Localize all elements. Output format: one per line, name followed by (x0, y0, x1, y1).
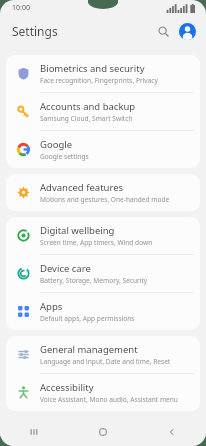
staticText: Accounts and backup (40, 100, 136, 113)
staticText: Samsung Cloud, Smart Switch (40, 114, 133, 123)
button[interactable]: Accessibility (6, 374, 200, 411)
staticText: Screen time, App timers, Wind down (40, 238, 153, 247)
staticText: Voice Assistant, Mono audio, Assistant m… (40, 395, 178, 404)
staticText: Google settings (40, 152, 89, 161)
staticText: Biometrics and security (40, 62, 145, 75)
staticText: Language and input, Date and time, Reset (40, 357, 171, 366)
staticText: Advanced features (40, 181, 124, 194)
button[interactable]: Search (152, 20, 174, 42)
staticText: Google (40, 138, 73, 151)
staticText: Default apps, App permissions (40, 314, 135, 323)
staticText: General management (40, 343, 138, 356)
staticText: Device care (40, 262, 91, 275)
button[interactable]: Back (137, 418, 206, 446)
staticText: Face recognition, Fingerprints, Privacy (40, 76, 158, 85)
staticText: Digital wellbeing (40, 224, 115, 237)
button[interactable]: General management (6, 336, 200, 374)
button[interactable]: Google (6, 131, 200, 168)
button[interactable]: Digital wellbeing (6, 217, 200, 255)
staticText: 10:00 (12, 3, 30, 13)
button[interactable]: Accounts and backup (6, 93, 200, 131)
staticText: Accessibility (40, 381, 94, 394)
button[interactable]: Biometrics and security (6, 55, 200, 93)
staticText: Apps (40, 300, 63, 313)
staticText: Settings (12, 23, 58, 39)
staticText: Battery, Storage, Memory, Security (40, 276, 148, 285)
button[interactable]: Recents (0, 418, 68, 446)
button[interactable]: Home (68, 418, 137, 446)
button[interactable]: Advanced features (6, 174, 200, 211)
button[interactable]: Apps (6, 293, 200, 330)
button[interactable]: Device care (6, 255, 200, 293)
button[interactable]: Account (176, 20, 198, 42)
staticText: Motions and gestures, One-handed mode (40, 195, 170, 204)
